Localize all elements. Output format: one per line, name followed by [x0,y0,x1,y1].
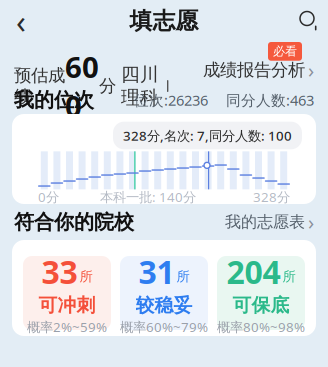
button[interactable]: 成绩报告分析 [203,57,314,83]
button[interactable]: 31 [120,256,208,330]
staticText: 328分,名次: 7,同分人数: 100 [123,127,292,144]
staticText: 可保底 [232,294,289,317]
staticText: 较稳妥 [135,294,192,317]
staticText: 所 [282,268,295,285]
button[interactable]: 204 [217,256,305,330]
staticText: ‹ [16,0,26,42]
staticText: 可冲刺 [38,294,95,317]
staticText: 位次:26236 [134,90,208,110]
staticText: › [308,57,314,83]
button[interactable]: 搜索 [286,1,328,41]
staticText: 成绩报告分析 [203,59,305,81]
button[interactable]: 返回 [0,1,42,41]
staticText: 0分 [38,188,59,206]
staticText: 我的位次 [14,88,94,112]
staticText: 我的志愿表 [225,212,305,232]
staticText: 概率80%~98% [217,318,305,336]
staticText: 600 [65,47,99,125]
staticText: 本科一批: 140分 [100,188,196,206]
button[interactable]: 预估成绩 [14,47,185,93]
staticText: 204 [226,250,280,293]
staticText: 分 [99,75,121,97]
staticText: 概率2%~59% [27,318,107,336]
staticText: › [308,209,314,235]
staticText: 所 [79,268,92,285]
staticText: 预估成绩 [14,65,65,107]
staticText: 所 [176,268,189,285]
staticText: 328分 [253,188,290,206]
staticText: 必看 [273,44,297,59]
staticText: 符合你的院校 [14,210,134,234]
button[interactable]: 我的志愿表 [225,209,314,235]
staticText: 四川 理科 [121,63,165,109]
staticText: 概率60%~79% [120,318,208,336]
staticText: 33 [41,250,77,293]
staticText: 同分人数:463 [226,90,314,110]
staticText: 填志愿 [129,7,198,35]
button[interactable]: 33 [23,256,111,330]
staticText: 31 [138,250,174,293]
